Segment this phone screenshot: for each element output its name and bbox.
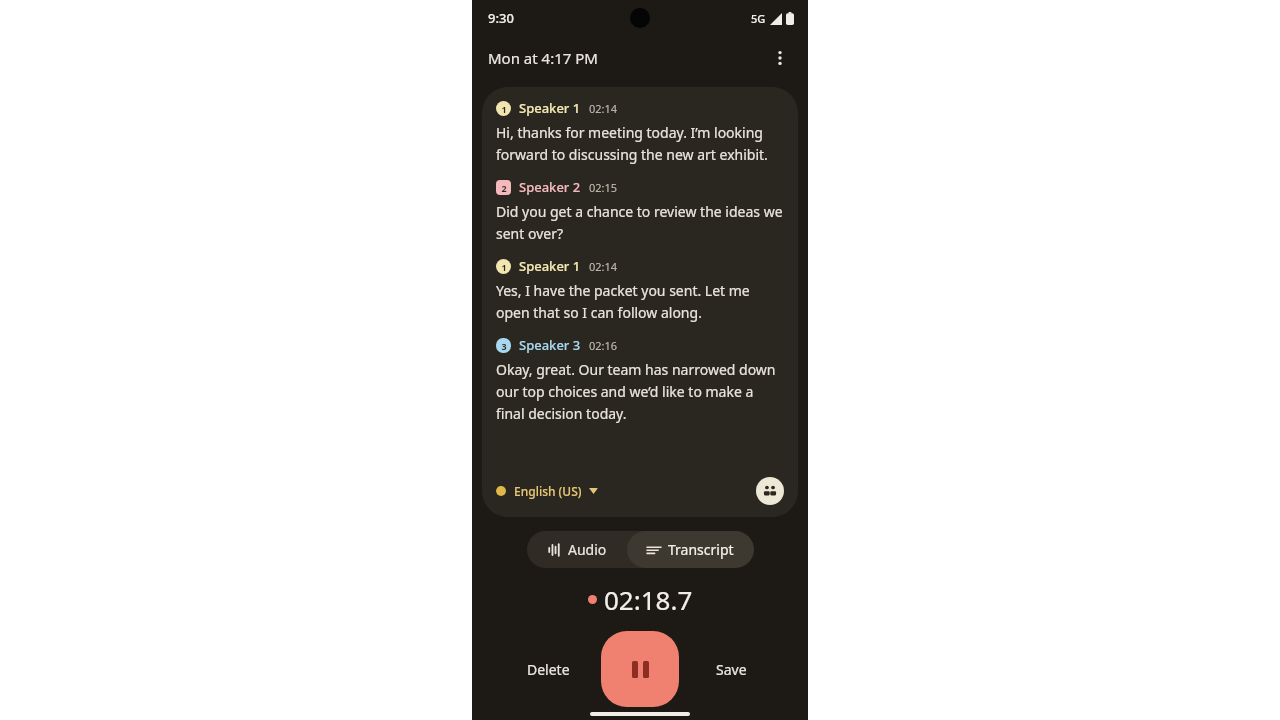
staticText: 3	[501, 340, 507, 352]
button[interactable]: More options	[760, 38, 800, 78]
staticText: Hi, thanks for meeting today. I’m lookin…	[496, 123, 784, 164]
staticText: 02:15	[589, 180, 618, 195]
staticText: 02:16	[589, 338, 618, 353]
staticText: 9:30	[488, 9, 514, 27]
button[interactable]: English (US)	[496, 479, 598, 503]
staticText: Delete	[527, 660, 570, 679]
staticText: Yes, I have the packet you sent. Let me …	[496, 281, 784, 322]
staticText: 02:14	[589, 259, 618, 274]
staticText: 2	[501, 182, 507, 194]
staticText: Did you get a chance to review the ideas…	[496, 202, 784, 243]
button[interactable]: Pause recording	[601, 631, 679, 707]
button[interactable]: 1	[482, 87, 798, 517]
staticText: Okay, great. Our team has narrowed down …	[496, 360, 784, 423]
staticText: English (US)	[514, 483, 582, 499]
button[interactable]: Speakers	[756, 477, 784, 505]
staticText: Mon at 4:17 PM	[488, 48, 598, 68]
staticText: Speaker 3	[519, 336, 581, 354]
button[interactable]: Audio	[527, 531, 627, 568]
staticText: 02:18.7	[604, 582, 693, 617]
staticText: 1	[501, 261, 507, 273]
staticText: Speaker 1	[519, 99, 581, 117]
staticText: Save	[716, 660, 747, 679]
staticText: 5G	[751, 11, 766, 26]
button[interactable]: Delete	[496, 647, 601, 691]
staticText: 02:14	[589, 101, 618, 116]
staticText: Transcript	[668, 540, 734, 559]
staticText: 1	[501, 103, 507, 115]
staticText: Speaker 2	[519, 178, 581, 196]
button[interactable]: Save	[679, 647, 784, 691]
staticText: Speaker 1	[519, 257, 581, 275]
button[interactable]: Transcript	[627, 531, 754, 568]
staticText: Audio	[568, 540, 607, 559]
